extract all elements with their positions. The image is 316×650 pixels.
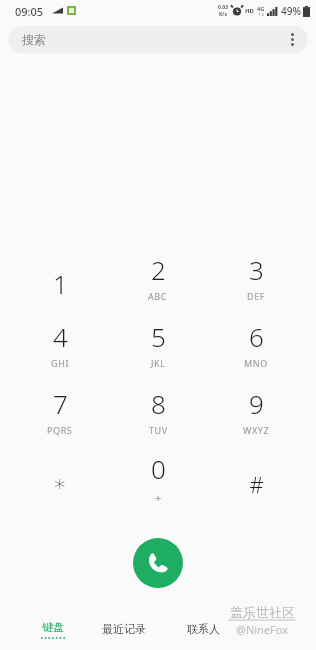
staticText: MNO bbox=[244, 357, 268, 369]
staticText: @NineFox bbox=[236, 622, 289, 637]
staticText: ↑↓ bbox=[258, 12, 265, 17]
button[interactable]: 键盘 bbox=[13, 612, 93, 646]
staticText: 1 bbox=[53, 266, 68, 301]
staticText: TUV bbox=[149, 424, 168, 436]
staticText: 最近记录 bbox=[102, 622, 146, 636]
staticText: + bbox=[155, 490, 162, 505]
button[interactable]: 0 bbox=[113, 453, 203, 515]
staticText: 盖乐世社区 bbox=[230, 604, 295, 620]
button[interactable]: 最近记录 bbox=[84, 612, 164, 646]
staticText: ∗ bbox=[53, 471, 67, 497]
button[interactable]: ∗ bbox=[15, 453, 105, 515]
staticText: 7 bbox=[53, 386, 68, 421]
staticText: K/s bbox=[219, 11, 227, 18]
staticText: 联系人 bbox=[187, 622, 220, 636]
staticText: PQRS bbox=[47, 424, 73, 436]
staticText: ABC bbox=[148, 290, 168, 302]
staticText: 0 bbox=[151, 451, 166, 486]
staticText: # bbox=[249, 469, 264, 499]
button[interactable]: 2 bbox=[113, 252, 203, 314]
button[interactable]: 联系人 bbox=[163, 612, 243, 646]
button[interactable]: 9 bbox=[211, 386, 301, 448]
staticText: HD bbox=[245, 7, 254, 15]
staticText: 5 bbox=[151, 319, 166, 354]
staticText: 0.03 bbox=[218, 4, 228, 11]
button[interactable]: 3 bbox=[211, 252, 301, 314]
staticText: 6 bbox=[249, 319, 264, 354]
staticText: 4 bbox=[53, 319, 68, 354]
button[interactable]: 1 bbox=[15, 252, 105, 314]
staticText: 4G bbox=[257, 5, 265, 12]
button[interactable]: 8 bbox=[113, 386, 203, 448]
staticText: 49% bbox=[281, 4, 301, 18]
staticText: 键盘 bbox=[42, 620, 64, 634]
staticText: 8 bbox=[151, 386, 166, 421]
button[interactable]: # bbox=[211, 453, 301, 515]
staticText: JKL bbox=[151, 357, 166, 369]
staticText: DEF bbox=[247, 290, 266, 302]
button[interactable]: 4 bbox=[15, 319, 105, 381]
staticText: 2 bbox=[151, 252, 166, 287]
staticText: 09:05 bbox=[15, 4, 44, 19]
button[interactable]: 7 bbox=[15, 386, 105, 448]
staticText: 3 bbox=[249, 252, 264, 287]
staticText: 搜索 bbox=[22, 32, 46, 47]
staticText: WXYZ bbox=[243, 424, 270, 436]
staticText: 9 bbox=[249, 386, 264, 421]
button[interactable]: Call bbox=[133, 538, 183, 588]
button[interactable]: 5 bbox=[113, 319, 203, 381]
button[interactable]: More options bbox=[276, 26, 308, 53]
button[interactable]: 搜索 bbox=[8, 26, 308, 53]
button[interactable]: 6 bbox=[211, 319, 301, 381]
staticText: GHI bbox=[51, 357, 70, 369]
